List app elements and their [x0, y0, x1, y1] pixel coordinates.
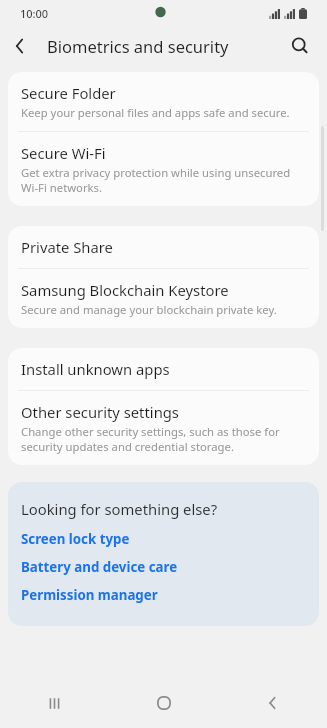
- staticText: Secure and manage your blockchain privat…: [21, 302, 277, 317]
- staticText: Get extra privacy protection while using…: [21, 165, 303, 195]
- button[interactable]: Secure Folder: [8, 72, 319, 131]
- staticText: Other security settings: [21, 402, 179, 422]
- staticText: Change other security settings, such as …: [21, 424, 303, 454]
- staticText: Secure Wi-Fi: [21, 143, 106, 163]
- button[interactable]: Other security settings: [8, 391, 319, 465]
- staticText: Screen lock type: [21, 530, 130, 548]
- button[interactable]: Search: [280, 26, 320, 66]
- staticText: 10:00: [20, 6, 49, 21]
- button[interactable]: Samsung Blockchain Keystore: [8, 269, 319, 328]
- button[interactable]: Back: [0, 26, 40, 66]
- staticText: Secure Folder: [21, 83, 116, 103]
- staticText: Samsung Blockchain Keystore: [21, 280, 229, 300]
- staticText: Looking for something else?: [21, 499, 218, 519]
- staticText: Install unknown apps: [21, 359, 170, 379]
- staticText: Keep your personal files and apps safe a…: [21, 105, 290, 120]
- button[interactable]: Recents: [0, 678, 109, 728]
- staticText: Private Share: [21, 237, 113, 257]
- button[interactable]: Secure Wi-Fi: [8, 132, 319, 206]
- button[interactable]: Screen lock type: [21, 530, 130, 548]
- staticText: Battery and device care: [21, 558, 178, 576]
- button[interactable]: Battery and device care: [21, 558, 178, 576]
- button[interactable]: Home: [109, 678, 218, 728]
- button[interactable]: Back: [218, 678, 327, 728]
- staticText: Biometrics and security: [47, 35, 229, 57]
- staticText: Permission manager: [21, 586, 158, 604]
- button[interactable]: Permission manager: [21, 586, 158, 604]
- button[interactable]: Install unknown apps: [8, 348, 319, 390]
- button[interactable]: Private Share: [8, 226, 319, 268]
